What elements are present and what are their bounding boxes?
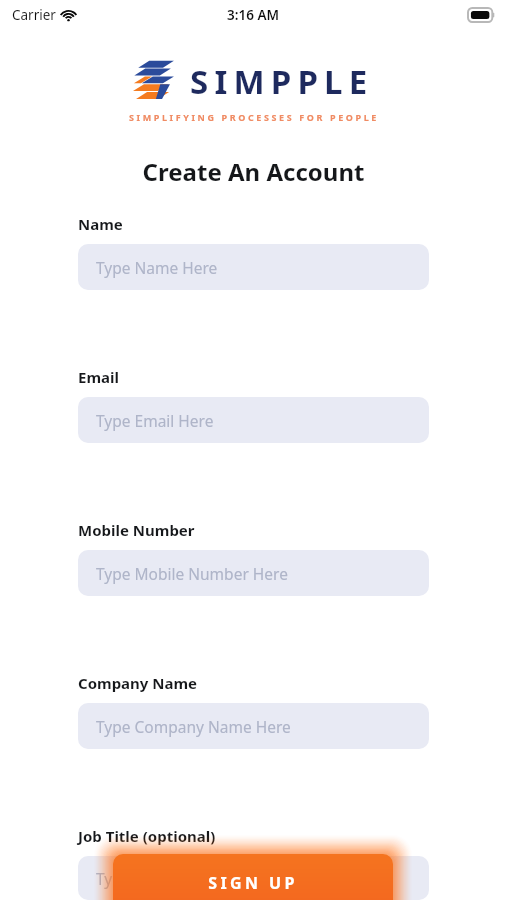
staticText: Carrier: [12, 6, 56, 24]
button[interactable]: Type Mobile Number Here: [78, 550, 429, 596]
staticText: SIMPPLE: [190, 59, 374, 104]
button[interactable]: Type Company Name Here: [78, 703, 429, 749]
staticText: Type Company Name Here: [96, 716, 291, 737]
staticText: SIMPLIFYING PROCESSES FOR PEOPLE: [129, 111, 379, 123]
staticText: Type Job Title Here: [96, 868, 232, 889]
button[interactable]: Sign up: [113, 854, 393, 900]
staticText: Company Name: [78, 673, 198, 693]
staticText: Type Name Here: [96, 257, 218, 278]
staticText: Create An Account: [0, 155, 507, 188]
staticText: Job Title (optional): [78, 826, 216, 846]
staticText: Type Mobile Number Here: [96, 563, 288, 584]
staticText: Type Email Here: [96, 410, 214, 431]
button[interactable]: Type Name Here: [78, 244, 429, 290]
button[interactable]: Type Job Title Here: [78, 856, 429, 900]
staticText: Mobile Number: [78, 520, 195, 540]
staticText: Email: [78, 367, 119, 387]
staticText: SIGN UP: [208, 872, 298, 894]
staticText: 3:16 AM: [227, 6, 280, 24]
staticText: Name: [78, 214, 123, 234]
button[interactable]: Type Email Here: [78, 397, 429, 443]
